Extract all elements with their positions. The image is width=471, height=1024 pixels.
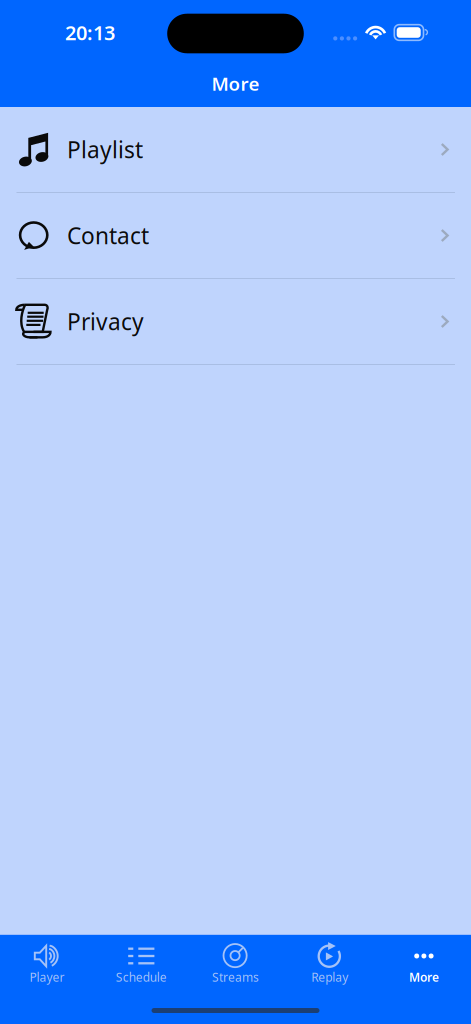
staticText: Player: [30, 969, 65, 985]
staticText: More: [409, 969, 439, 985]
button[interactable]: Privacy: [0, 279, 471, 365]
button[interactable]: Playlist: [0, 107, 471, 193]
staticText: Privacy: [67, 306, 144, 336]
staticText: Schedule: [116, 969, 167, 985]
button[interactable]: Contact: [0, 193, 471, 279]
staticText: Contact: [67, 220, 149, 250]
staticText: Playlist: [67, 134, 143, 164]
button[interactable]: Streams: [188, 935, 283, 987]
button[interactable]: Replay: [283, 935, 377, 987]
button[interactable]: Player: [0, 935, 94, 987]
staticText: More: [211, 71, 259, 96]
button[interactable]: More: [377, 935, 471, 987]
staticText: 20:13: [65, 19, 115, 46]
staticText: Replay: [311, 969, 348, 985]
staticText: Streams: [212, 969, 259, 985]
button[interactable]: Schedule: [94, 935, 188, 987]
